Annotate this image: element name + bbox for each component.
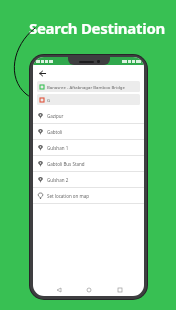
button[interactable]: Gabtoli [33, 124, 144, 139]
button[interactable]: Home [83, 284, 94, 295]
staticText: Banasree - Aftabnagar Bamboo Bridge [47, 84, 125, 90]
button[interactable]: Recent apps [114, 284, 125, 295]
button[interactable]: Gabtoli Bus Stand [33, 156, 144, 171]
button[interactable]: Set location on map [33, 188, 144, 203]
staticText: Gazipur [47, 113, 64, 119]
staticText: G [47, 97, 51, 103]
button[interactable]: Back [36, 67, 48, 79]
button[interactable]: Gulshan 2 [33, 172, 144, 187]
staticText: Gulshan 1 [47, 145, 69, 151]
staticText: Set location on map [47, 193, 90, 199]
button[interactable]: Gulshan 1 [33, 140, 144, 155]
button[interactable]: G [37, 94, 140, 105]
staticText: Search Destination [29, 18, 165, 38]
button[interactable]: Gazipur [33, 108, 144, 123]
staticText: Gulshan 2 [47, 177, 69, 183]
staticText: Gabtoli Bus Stand [47, 161, 85, 167]
button[interactable]: Back [53, 284, 64, 295]
staticText: Gabtoli [47, 129, 63, 135]
button[interactable]: Banasree - Aftabnagar Bamboo Bridge [37, 81, 140, 92]
